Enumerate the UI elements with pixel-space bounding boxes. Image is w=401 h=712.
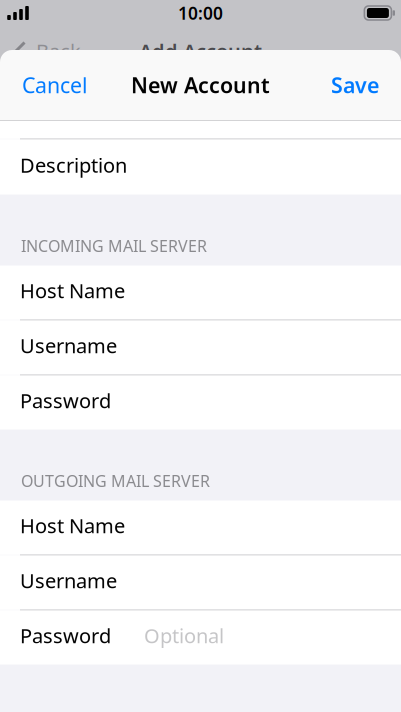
staticText: Host Name [20, 277, 125, 304]
button[interactable]: Description [0, 139, 401, 194]
staticText: Optional [144, 622, 224, 649]
staticText: 10:00 [178, 1, 223, 24]
button[interactable]: Password [0, 375, 401, 429]
button[interactable]: Host Name [0, 265, 401, 319]
staticText: INCOMING MAIL SERVER [21, 235, 207, 256]
button[interactable]: Host Name [0, 500, 401, 554]
staticText: Add Account [139, 38, 262, 64]
button[interactable]: Username [0, 320, 401, 374]
staticText: Username [20, 567, 117, 594]
button[interactable]: Password [0, 610, 401, 664]
button[interactable]: Username [0, 555, 401, 609]
staticText: Password [20, 387, 111, 414]
staticText: Username [20, 332, 117, 359]
staticText: Back [36, 38, 81, 64]
staticText: Description [20, 152, 127, 178]
staticText: Host Name [20, 512, 125, 539]
staticText: New Account [131, 71, 270, 99]
button[interactable]: Save [325, 63, 385, 107]
staticText: Save [331, 71, 379, 99]
staticText: OUTGOING MAIL SERVER [21, 470, 210, 491]
button[interactable]: Cancel [16, 63, 94, 107]
staticText: Cancel [22, 71, 88, 99]
staticText: Password [20, 622, 111, 649]
